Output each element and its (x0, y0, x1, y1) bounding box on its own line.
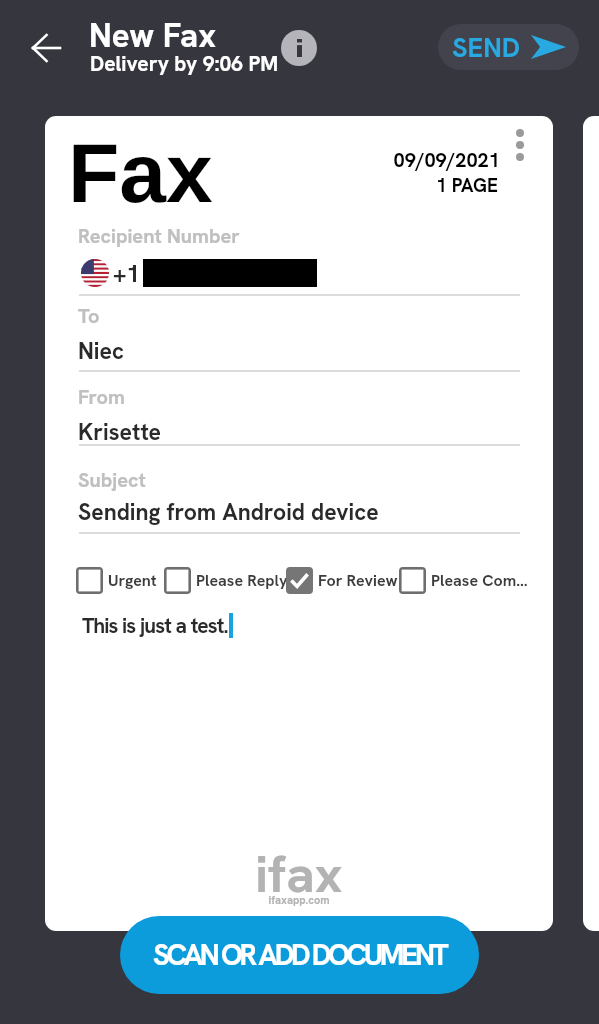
staticText: Fax (68, 126, 213, 220)
button[interactable]: Info (281, 30, 317, 66)
staticText: This is just a test. (82, 612, 228, 639)
button[interactable]: More options (497, 119, 543, 171)
button[interactable]: SCAN OR ADD DOCUMENT (120, 916, 479, 994)
staticText: Please Reply (196, 570, 288, 591)
staticText: Please Com... (431, 570, 528, 591)
button[interactable]: Back (22, 24, 70, 72)
button[interactable]: Please Reply (164, 567, 288, 594)
staticText: 09/09/2021 (295, 147, 500, 173)
button[interactable]: Urgent (76, 567, 157, 594)
staticText: Krisette (78, 417, 162, 447)
staticText: Recipient Number (78, 223, 240, 249)
staticText: 1 PAGE (295, 173, 498, 198)
staticText: Niec (78, 336, 124, 366)
staticText: New Fax (89, 14, 217, 57)
staticText: To (78, 303, 100, 329)
staticText: SCAN OR ADD DOCUMENT (153, 936, 446, 974)
staticText: Delivery by 9:06 PM (90, 50, 279, 77)
staticText: +1 (113, 258, 140, 288)
staticText: Urgent (108, 570, 157, 591)
staticText: From (78, 384, 125, 410)
button[interactable]: Please Com... (399, 567, 528, 594)
button[interactable]: SEND (438, 24, 579, 70)
staticText: ifax (45, 840, 553, 908)
staticText: SEND (452, 30, 520, 65)
staticText: Sending from Android device (78, 497, 379, 527)
button[interactable]: For Review (286, 567, 398, 594)
staticText: For Review (318, 570, 398, 591)
staticText: ifaxapp.com (45, 893, 553, 907)
staticText: Subject (78, 467, 146, 493)
